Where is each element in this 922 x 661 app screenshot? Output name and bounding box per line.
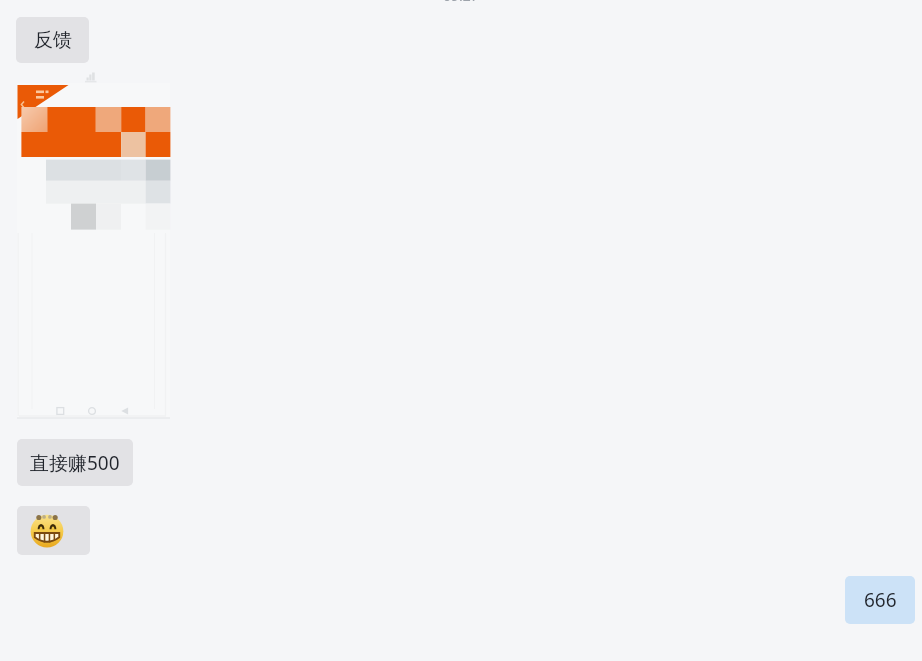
button[interactable]: Photo <box>17 83 170 418</box>
button[interactable]: 666 <box>845 576 915 624</box>
staticText: 反馈 <box>34 28 72 52</box>
staticText: 直接赚500 <box>30 450 120 476</box>
button[interactable]: 反馈 <box>16 17 89 63</box>
button[interactable]: Grinning face sticker <box>17 506 90 555</box>
button[interactable]: 直接赚500 <box>17 439 133 486</box>
staticText: 666 <box>864 587 897 613</box>
staticText: 09:27 <box>443 0 479 5</box>
